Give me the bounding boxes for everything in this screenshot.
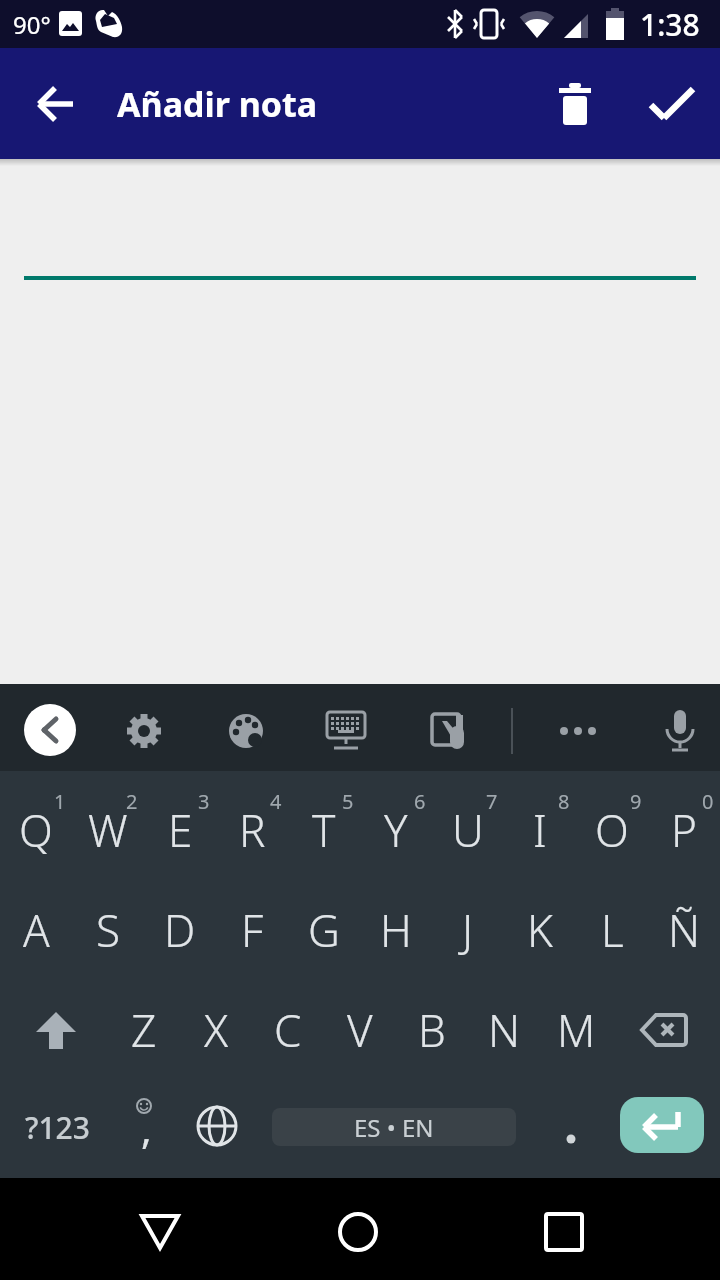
- button[interactable]: X: [146, 970, 286, 1090]
- staticText: R: [239, 800, 266, 860]
- staticText: G: [308, 900, 340, 960]
- staticText: 0: [702, 788, 714, 815]
- staticText: T: [312, 800, 336, 860]
- button[interactable]: N: [434, 970, 574, 1090]
- button[interactable]: [547, 76, 603, 132]
- staticText: H: [380, 900, 412, 960]
- button[interactable]: [218, 703, 274, 759]
- staticText: 3: [198, 788, 210, 815]
- button[interactable]: [540, 1092, 600, 1164]
- staticText: O: [595, 800, 629, 860]
- staticText: 4: [270, 788, 282, 815]
- button[interactable]: H: [326, 870, 466, 990]
- button[interactable]: Z: [74, 970, 214, 1090]
- button[interactable]: [24, 200, 696, 320]
- button[interactable]: O: [542, 770, 682, 890]
- button[interactable]: [112, 1092, 176, 1164]
- button[interactable]: [18, 994, 94, 1066]
- button[interactable]: E: [110, 770, 250, 890]
- button[interactable]: I: [470, 770, 610, 890]
- button[interactable]: [120, 1192, 200, 1272]
- staticText: A: [23, 900, 50, 960]
- staticText: N: [488, 1000, 521, 1060]
- staticText: Y: [384, 800, 408, 860]
- button[interactable]: [652, 703, 708, 759]
- button[interactable]: S: [38, 870, 178, 990]
- staticText: Añadir nota: [117, 81, 318, 127]
- staticText: L: [601, 900, 624, 960]
- button[interactable]: [550, 703, 606, 759]
- button[interactable]: B: [362, 970, 502, 1090]
- staticText: D: [164, 900, 196, 960]
- button[interactable]: G: [254, 870, 394, 990]
- staticText: 9: [630, 788, 642, 815]
- staticText: P: [671, 800, 697, 860]
- staticText: W: [88, 800, 128, 860]
- staticText: Z: [131, 1000, 157, 1060]
- staticText: ,: [141, 1101, 152, 1155]
- button[interactable]: A: [0, 870, 106, 990]
- staticText: E: [168, 800, 193, 860]
- staticText: J: [462, 900, 474, 960]
- staticText: 6: [414, 788, 426, 815]
- button[interactable]: C: [218, 970, 358, 1090]
- staticText: 8: [558, 788, 570, 815]
- button[interactable]: P: [614, 770, 720, 890]
- button[interactable]: J: [398, 870, 538, 990]
- button[interactable]: V: [290, 970, 430, 1090]
- button[interactable]: [116, 703, 172, 759]
- button[interactable]: ?123: [0, 1067, 127, 1187]
- staticText: V: [347, 1000, 373, 1060]
- button[interactable]: Y: [326, 770, 466, 890]
- button[interactable]: K: [470, 870, 610, 990]
- button[interactable]: [28, 76, 84, 132]
- button[interactable]: [644, 76, 700, 132]
- button[interactable]: [620, 1097, 704, 1153]
- staticText: Ñ: [668, 900, 701, 960]
- button[interactable]: W: [38, 770, 178, 890]
- staticText: K: [527, 900, 553, 960]
- staticText: ?123: [25, 1107, 90, 1148]
- staticText: M: [557, 1000, 596, 1060]
- staticText: ES • EN: [354, 1111, 434, 1144]
- button[interactable]: D: [110, 870, 250, 990]
- button[interactable]: [318, 1192, 398, 1272]
- button[interactable]: Q: [0, 770, 106, 890]
- staticText: 2: [126, 788, 138, 815]
- button[interactable]: [421, 703, 477, 759]
- button[interactable]: M: [506, 970, 646, 1090]
- button[interactable]: [626, 994, 702, 1066]
- staticText: I: [533, 800, 547, 860]
- button[interactable]: Ñ: [614, 870, 720, 990]
- staticText: 5: [342, 788, 354, 815]
- staticText: 1:38: [640, 4, 700, 45]
- staticText: B: [418, 1000, 446, 1060]
- button[interactable]: [318, 703, 374, 759]
- button[interactable]: [189, 1098, 245, 1154]
- staticText: U: [452, 800, 484, 860]
- button[interactable]: R: [182, 770, 322, 890]
- staticText: X: [204, 1000, 229, 1060]
- button[interactable]: L: [542, 870, 682, 990]
- staticText: Q: [19, 800, 53, 860]
- staticText: F: [241, 900, 264, 960]
- staticText: 1: [54, 788, 66, 815]
- staticText: 7: [486, 788, 498, 815]
- button[interactable]: [524, 1192, 604, 1272]
- button[interactable]: U: [398, 770, 538, 890]
- button[interactable]: [24, 704, 76, 756]
- button[interactable]: ES • EN: [272, 1108, 516, 1146]
- staticText: 90°: [13, 8, 51, 41]
- staticText: C: [274, 1000, 302, 1060]
- button[interactable]: T: [254, 770, 394, 890]
- button[interactable]: F: [182, 870, 322, 990]
- staticText: S: [96, 900, 121, 960]
